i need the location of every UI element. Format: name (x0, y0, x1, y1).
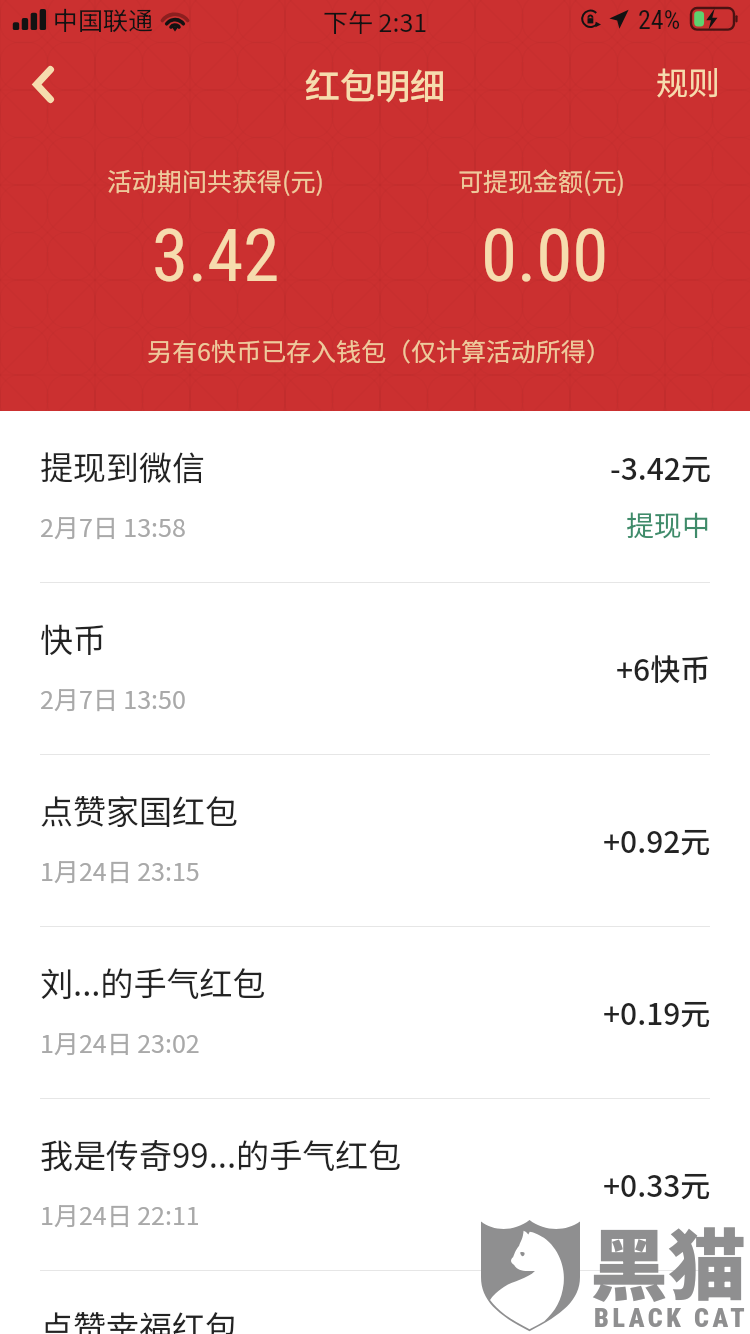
staticText: -3.42元 (610, 445, 711, 488)
staticText: 24% (638, 5, 681, 35)
button[interactable]: 提现到微信 (0, 411, 750, 583)
staticText: 点赞家国红包 (40, 786, 238, 834)
staticText: 刘...的手气红包 (40, 958, 266, 1006)
staticText: 黑猫 (590, 1204, 747, 1317)
staticText: BLACK CAT (594, 1303, 749, 1333)
staticText: 3.42 (152, 213, 280, 299)
staticText: +6快币 (616, 646, 711, 689)
staticText: +0.33元 (603, 1162, 711, 1205)
staticText: 1月24日 22:11 (40, 1196, 200, 1232)
button[interactable]: 刘...的手气红包 (0, 927, 750, 1099)
staticText: 下午 2:31 (323, 3, 428, 39)
button[interactable]: 返回 (0, 47, 86, 115)
staticText: 1月24日 23:02 (40, 1024, 200, 1060)
staticText: 可提现金额(元) (458, 162, 625, 198)
staticText: 我是传奇99...的手气红包 (40, 1130, 402, 1178)
staticText: 红包明细 (305, 58, 446, 109)
staticText: 活动期间共获得(元) (107, 162, 324, 198)
staticText: 2月7日 13:50 (40, 680, 186, 716)
staticText: 0.00 (481, 213, 609, 299)
staticText: 另有6快币已存入钱包（仅计算活动所得） (147, 332, 611, 368)
other: Rotation lock (580, 9, 601, 30)
staticText: 快币 (40, 614, 106, 662)
button[interactable]: 点赞家国红包 (0, 755, 750, 927)
staticText: 中国联通 (53, 1, 154, 37)
staticText: +0.92元 (603, 818, 711, 861)
staticText: +0.19元 (603, 990, 711, 1033)
staticText: 2月7日 13:58 (40, 508, 186, 544)
staticText: 提现到微信 (40, 442, 205, 490)
staticText: 点赞幸福红包 (40, 1302, 238, 1334)
button[interactable]: 我是传奇99...的手气红包 (0, 1099, 750, 1271)
button[interactable]: 点赞幸福红包 (0, 1271, 750, 1334)
staticText: 规则 (656, 58, 721, 104)
staticText: 提现中 (626, 504, 711, 545)
button[interactable]: 快币 (0, 583, 750, 755)
staticText: 1月24日 23:15 (40, 852, 200, 888)
button[interactable]: 规则 (627, 47, 750, 115)
